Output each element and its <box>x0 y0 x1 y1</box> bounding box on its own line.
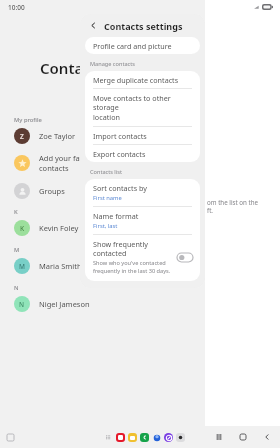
button[interactable]: Name format <box>85 207 200 235</box>
staticText: Maria Smith <box>39 261 82 271</box>
button[interactable]: Phone <box>140 433 149 442</box>
staticText: Nigel Jameson <box>39 299 90 309</box>
staticText: M <box>19 262 25 271</box>
staticText: Groups <box>39 186 65 196</box>
staticText: First, last <box>93 222 118 230</box>
staticText: Zoe Taylor <box>39 131 76 141</box>
button[interactable]: Sort contacts by <box>85 179 200 207</box>
button[interactable]: Show frequently contacted <box>85 235 200 281</box>
button[interactable]: Back <box>88 20 99 31</box>
staticText: Import contacts <box>93 131 147 141</box>
button[interactable]: Add your favourite <box>0 153 205 173</box>
staticText: First name <box>93 194 122 202</box>
button[interactable]: Gallery <box>116 433 125 442</box>
button[interactable]: Keyboard <box>6 433 14 441</box>
button[interactable]: Internet <box>152 433 161 442</box>
staticText: Show frequently contacted <box>93 239 172 258</box>
button[interactable]: Groups <box>0 183 205 199</box>
other: Show frequently contacted <box>177 253 193 262</box>
staticText: Show who you've contacted <box>93 259 166 267</box>
staticText: Add your favourite <box>39 153 105 163</box>
staticText: Kevin Foley <box>39 223 79 233</box>
staticText: 10:00 <box>8 3 25 12</box>
button[interactable]: Import contacts <box>85 127 200 145</box>
staticText: N <box>14 284 19 292</box>
staticText: Sort contacts by <box>93 183 147 193</box>
staticText: Contacts settings <box>104 20 183 32</box>
staticText: location <box>93 112 120 122</box>
staticText: Name format <box>93 211 139 221</box>
staticText: Contacts list <box>90 168 122 176</box>
staticText: K <box>14 208 18 216</box>
staticText: Profile card and picture <box>93 41 172 51</box>
staticText: ft. <box>207 206 214 214</box>
button[interactable]: Apps <box>104 433 113 442</box>
button[interactable]: Browser <box>164 433 173 442</box>
button[interactable]: Merge duplicate contacts <box>85 71 200 89</box>
button[interactable]: Recents <box>214 432 224 442</box>
staticText: My profile <box>14 116 42 124</box>
button[interactable]: Move contacts to other storage <box>85 89 200 127</box>
button[interactable]: N <box>0 295 205 313</box>
staticText: K <box>20 224 25 233</box>
button[interactable]: M <box>0 257 205 275</box>
staticText: Manage contacts <box>90 60 135 68</box>
staticText: Export contacts <box>93 149 146 159</box>
staticText: M <box>14 246 20 254</box>
button[interactable]: Camera <box>176 433 185 442</box>
button[interactable]: Export contacts <box>85 145 200 162</box>
staticText: contacts <box>39 163 69 173</box>
staticText: Z <box>20 132 24 141</box>
button[interactable]: Z <box>0 127 205 145</box>
staticText: Move contacts to other storage <box>93 93 192 112</box>
staticText: frequently in the last 30 days. <box>93 267 171 275</box>
button[interactable]: K <box>0 219 205 237</box>
staticText: Merge duplicate contacts <box>93 75 179 85</box>
button[interactable]: Profile card and picture <box>85 37 200 54</box>
button[interactable]: Back <box>262 432 272 442</box>
button[interactable]: Home <box>238 432 248 442</box>
staticText: Contacts <box>40 58 105 78</box>
staticText: N <box>19 300 25 309</box>
button[interactable]: Messages <box>128 433 137 442</box>
staticText: om the list on the <box>207 198 259 206</box>
